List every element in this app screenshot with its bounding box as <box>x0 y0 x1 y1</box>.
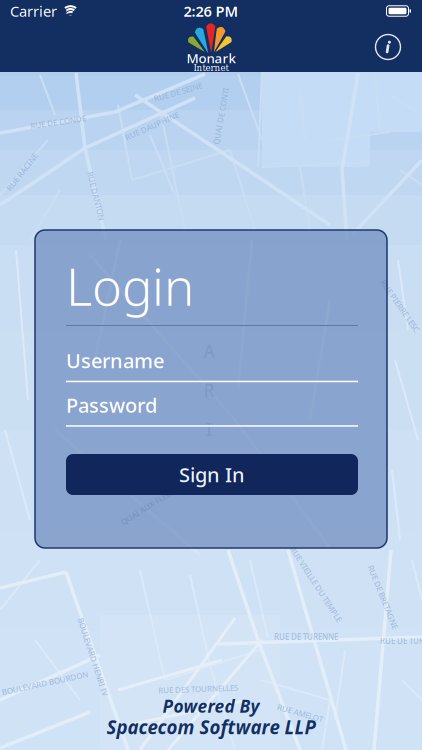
staticText: RUE VIEILLE DU TEMPLE <box>272 579 360 589</box>
staticText: 2:26 PM <box>183 1 238 21</box>
staticText: Powered By <box>162 694 259 717</box>
staticText: RUE DAUPHINE <box>123 121 181 131</box>
staticText: QUAI DE CONTI <box>192 111 250 121</box>
staticText: Carrier <box>10 1 57 21</box>
staticText: RUE DE CONDE <box>30 117 86 127</box>
staticText: Internet <box>193 63 228 73</box>
button[interactable]: Info <box>373 32 403 62</box>
staticText: R <box>203 378 214 401</box>
staticText: RUE DE BRETAGNE <box>349 592 417 602</box>
staticText: Password <box>66 392 157 418</box>
staticText: Login <box>66 252 194 320</box>
staticText: A <box>203 339 214 362</box>
staticText: Monark <box>186 49 235 67</box>
staticText: BOULEVARD HENRI IV <box>52 652 134 662</box>
staticText: RUE DE TURENNE <box>274 632 338 642</box>
staticText: RUE DES TOURNELLES <box>158 684 238 694</box>
button[interactable]: Password <box>66 395 358 427</box>
button[interactable]: Username <box>66 350 358 382</box>
staticText: QUAI AUX FLEURS <box>116 500 183 510</box>
staticText: RUE PIERRE LESC <box>369 301 422 311</box>
staticText: Spacecom Software LLP <box>106 715 315 739</box>
staticText: RUE DANTON <box>71 191 121 201</box>
staticText: Sign In <box>179 461 245 488</box>
button[interactable]: Sign In <box>66 454 358 495</box>
staticText: BOULEVARD BOURDON <box>1 678 89 688</box>
staticText: RUE AMELOT <box>276 708 323 718</box>
staticText: I <box>206 417 212 440</box>
staticText: RUE RACINE <box>0 167 44 177</box>
staticText: RUE DE SEINE <box>153 87 203 97</box>
staticText: RUE DE TUR <box>380 636 422 646</box>
staticText: Username <box>66 347 164 374</box>
